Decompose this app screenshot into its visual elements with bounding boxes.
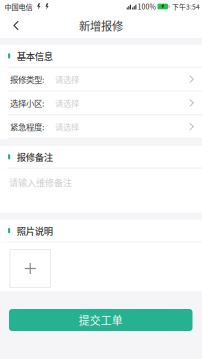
staticText: 请选择 xyxy=(55,97,79,109)
staticText: 下午3:54 xyxy=(172,2,200,11)
button[interactable]: 选择小区: xyxy=(0,91,202,115)
staticText: 请选择 xyxy=(55,73,79,85)
staticText: 报修备注 xyxy=(17,150,53,163)
staticText: 基本信息 xyxy=(17,49,53,63)
staticText: 紧急程度: xyxy=(10,120,44,133)
button[interactable]: 添加照片 xyxy=(10,249,50,287)
staticText: 新增报修 xyxy=(79,17,123,34)
staticText: 请输入维修备注 xyxy=(9,176,72,189)
staticText: 选择小区: xyxy=(10,97,44,109)
button[interactable]: 报修类型: xyxy=(0,68,202,91)
staticText: 报修类型: xyxy=(10,73,44,85)
staticText: 照片说明 xyxy=(17,224,53,237)
button[interactable]: 提交工单 xyxy=(9,309,192,331)
button[interactable]: 返回 xyxy=(0,13,31,38)
button[interactable]: 紧急程度: xyxy=(0,115,202,139)
staticText: 中国电信 xyxy=(4,1,32,12)
staticText: 请选择 xyxy=(55,121,79,133)
staticText: 提交工单 xyxy=(79,312,123,328)
staticText: 100% xyxy=(137,1,155,11)
